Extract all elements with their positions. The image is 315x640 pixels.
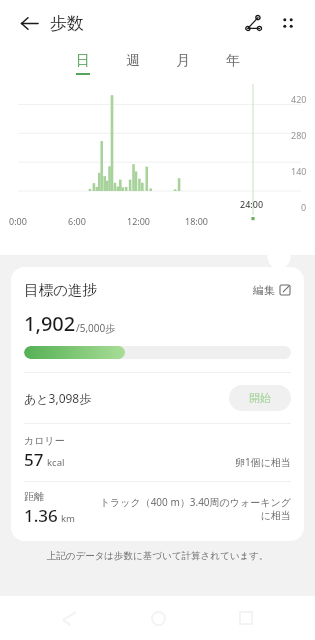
staticText: 月 xyxy=(176,52,190,70)
staticText: カロリー xyxy=(24,434,65,447)
button[interactable]: Share xyxy=(237,6,271,40)
staticText: 57 xyxy=(24,448,44,471)
staticText: 18:00 xyxy=(185,215,209,227)
staticText: 420 xyxy=(291,93,307,105)
staticText: 歩数 xyxy=(50,13,84,34)
staticText: 編集 xyxy=(253,283,275,297)
button[interactable]: 開始 xyxy=(229,385,291,411)
staticText: 0:00 xyxy=(9,215,27,227)
button[interactable]: 年 xyxy=(215,46,251,80)
staticText: 週 xyxy=(126,52,140,70)
button[interactable]: 月 xyxy=(165,46,201,80)
staticText: あと3,098歩 xyxy=(24,390,92,406)
button[interactable]: 編集 xyxy=(253,283,291,297)
staticText: 6:00 xyxy=(68,215,86,227)
staticText: 1.36 xyxy=(24,504,58,527)
staticText: 日 xyxy=(76,52,90,70)
staticText: 280 xyxy=(291,129,307,141)
staticText: 年 xyxy=(226,52,240,70)
staticText: km xyxy=(61,512,75,525)
staticText: /5,000歩 xyxy=(76,321,116,335)
button[interactable]: 週 xyxy=(115,46,151,80)
staticText: 140 xyxy=(291,165,307,177)
staticText: トラック（400 m）3.40周のウォーキングに相当 xyxy=(96,495,291,522)
staticText: 上記のデータは歩数に基づいて計算されています。 xyxy=(0,550,315,562)
staticText: 目標の進捗 xyxy=(24,281,97,299)
staticText: 開始 xyxy=(249,391,271,405)
staticText: 距離 xyxy=(24,490,44,503)
staticText: 1,902 xyxy=(24,310,76,337)
staticText: 24:00 xyxy=(240,198,264,210)
staticText: 卵1個に相当 xyxy=(235,455,291,469)
staticText: 0 xyxy=(301,201,307,213)
button[interactable]: Back xyxy=(12,6,46,40)
staticText: kcal xyxy=(47,456,65,469)
button[interactable]: More options xyxy=(271,6,305,40)
staticText: 12:00 xyxy=(127,215,151,227)
button[interactable]: 日 xyxy=(65,46,101,80)
